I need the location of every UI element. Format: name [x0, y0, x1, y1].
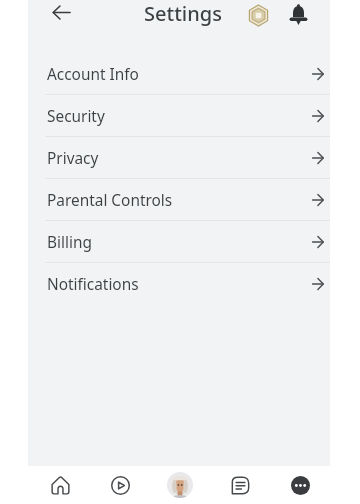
- button[interactable]: Home: [30, 466, 90, 504]
- button[interactable]: Notifications: [283, 1, 313, 28]
- button[interactable]: Billing: [28, 221, 330, 262]
- button[interactable]: Security: [28, 95, 330, 136]
- button[interactable]: Back: [46, 0, 76, 25]
- staticText: Security: [47, 106, 105, 127]
- button[interactable]: Notifications: [28, 263, 330, 304]
- button[interactable]: Videos: [90, 466, 150, 504]
- button[interactable]: Account Info: [28, 53, 330, 94]
- button[interactable]: Profile: [150, 466, 210, 504]
- staticText: Billing: [47, 232, 92, 253]
- staticText: Settings: [144, 0, 222, 27]
- button[interactable]: Messages: [210, 466, 270, 504]
- button[interactable]: More: [270, 466, 330, 504]
- staticText: Notifications: [47, 274, 139, 295]
- button[interactable]: Parental Controls: [28, 179, 330, 220]
- button[interactable]: Rewards badge: [243, 2, 273, 29]
- staticText: Account Info: [47, 64, 139, 85]
- staticText: Privacy: [47, 148, 99, 169]
- button[interactable]: Privacy: [28, 137, 330, 178]
- staticText: Parental Controls: [47, 190, 173, 211]
